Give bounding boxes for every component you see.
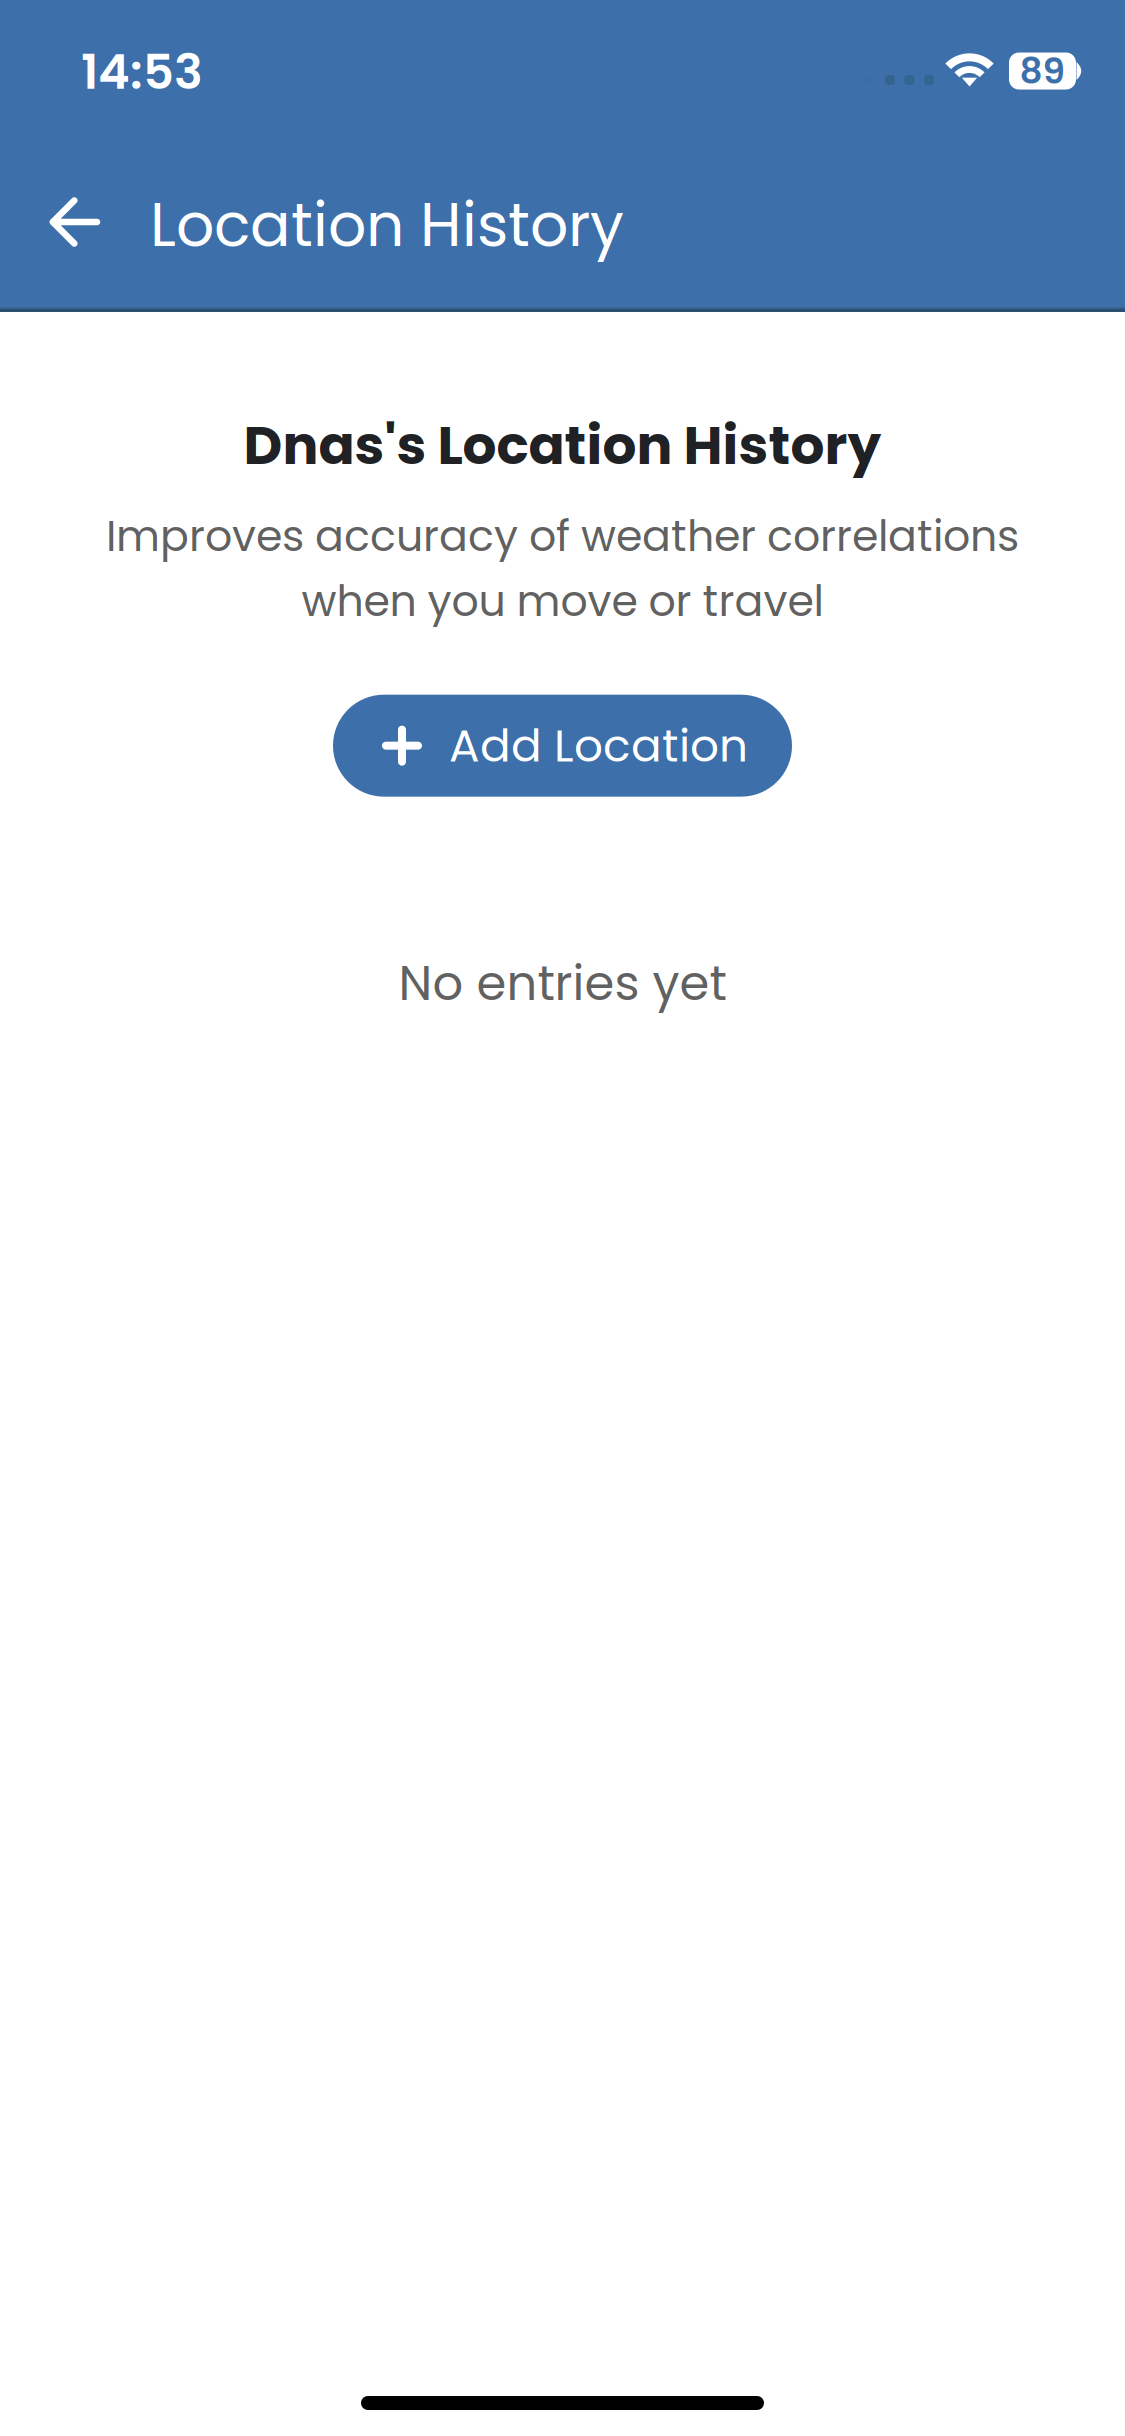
staticText: when you move or travel <box>301 571 823 631</box>
staticText: Location History <box>150 183 624 267</box>
staticText: 14:53 <box>81 38 203 106</box>
button[interactable]: Back <box>23 173 127 277</box>
staticText: 89 <box>1019 46 1065 96</box>
staticText: No entries yet <box>398 950 726 1017</box>
staticText: Dnas's Location History <box>243 408 881 483</box>
button[interactable]: Add Location <box>333 695 792 797</box>
staticText: Improves accuracy of weather correlation… <box>106 506 1019 566</box>
staticText: Add Location <box>449 714 748 777</box>
